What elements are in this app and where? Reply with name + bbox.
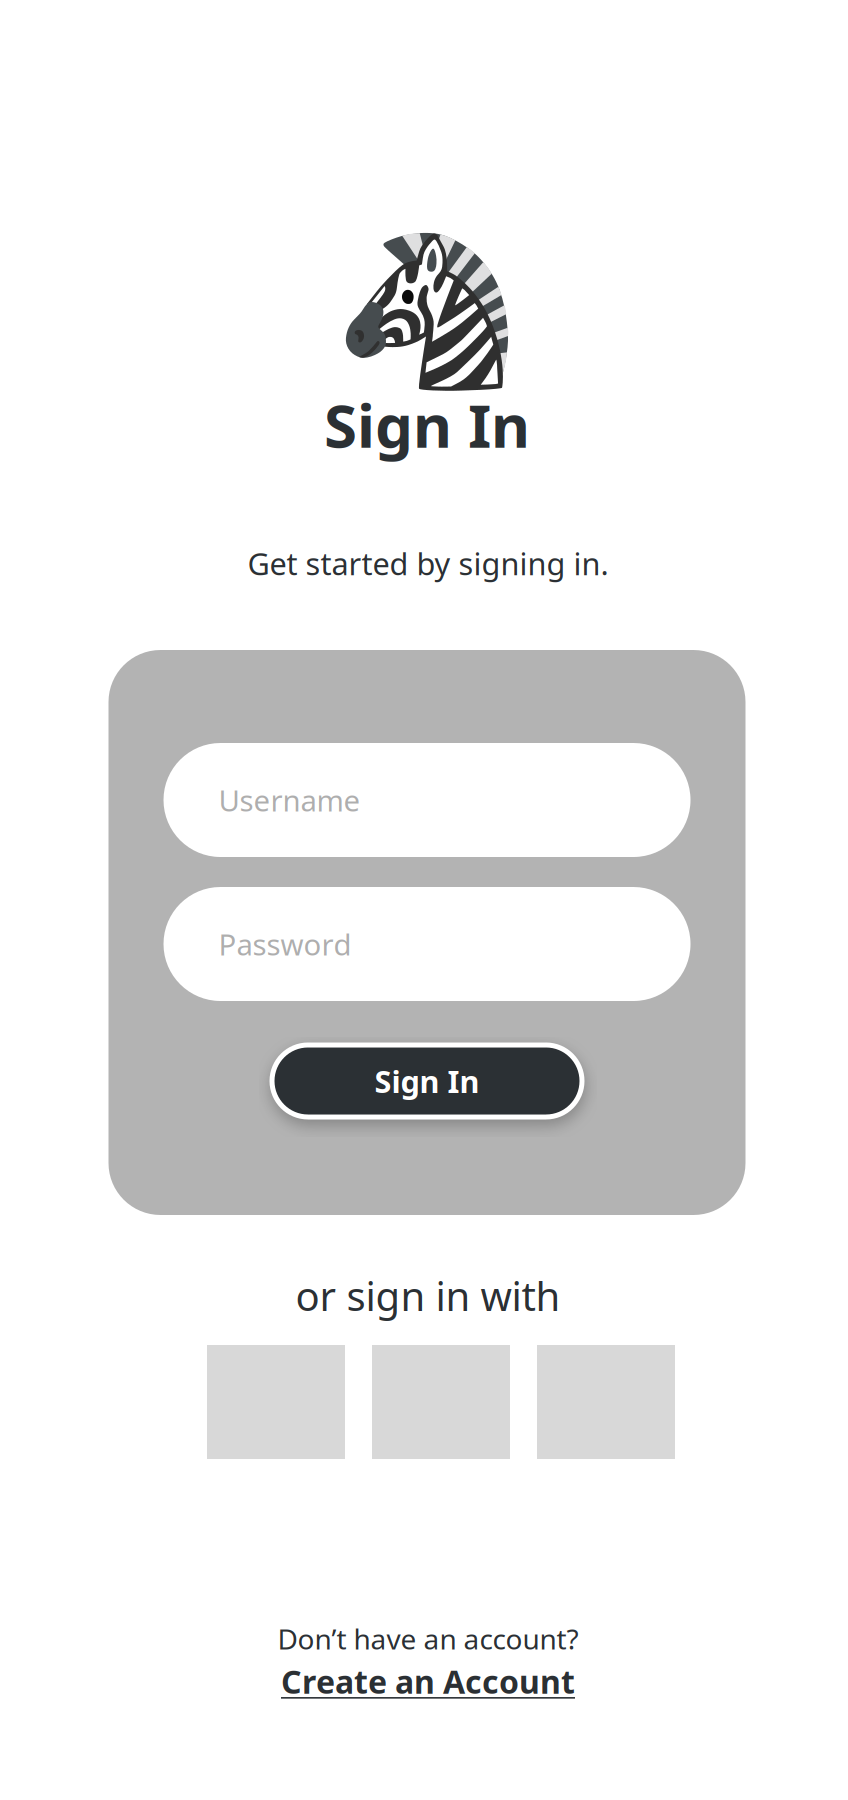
staticText: Create an Account [281, 1660, 575, 1703]
staticText: Password [218, 924, 351, 963]
button[interactable]: Create an Account [281, 1660, 575, 1703]
staticText: Sign In [324, 385, 530, 464]
staticText: or sign in with [295, 1269, 560, 1322]
button[interactable]: Password [163, 887, 690, 1001]
staticText: Get started by signing in. [247, 543, 608, 584]
button[interactable]: Username [163, 743, 690, 857]
staticText: Don’t have an account? [277, 1620, 578, 1657]
button[interactable]: Sign In [272, 1045, 582, 1117]
staticText: Sign In [374, 1061, 479, 1101]
staticText: 🦓 [334, 226, 520, 397]
staticText: Username [218, 780, 360, 819]
